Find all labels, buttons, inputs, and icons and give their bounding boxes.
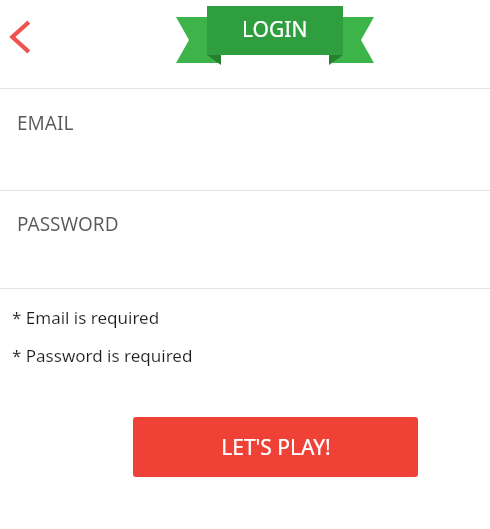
staticText: LOGIN [242,15,308,44]
staticText: * Password is required [12,344,193,367]
staticText: * Email is required [12,306,160,329]
staticText: PASSWORD [17,211,119,237]
staticText: EMAIL [17,110,74,136]
button[interactable]: LET'S PLAY! [133,417,418,477]
button[interactable]: PASSWORD [0,191,490,288]
button[interactable]: EMAIL [0,89,490,190]
button[interactable]: Back [0,13,44,61]
staticText: LET'S PLAY! [221,433,331,462]
